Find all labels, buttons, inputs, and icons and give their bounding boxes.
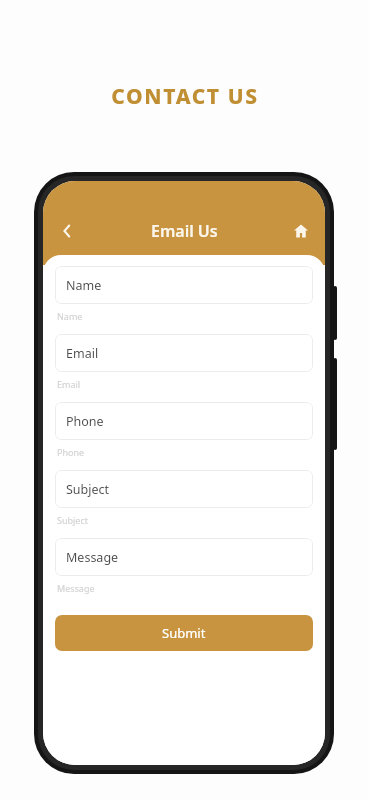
staticText: Message <box>57 582 95 594</box>
button[interactable]: Email <box>55 334 313 372</box>
staticText: Subject <box>57 514 89 526</box>
staticText: Phone <box>57 446 85 458</box>
staticText: Name <box>57 310 83 322</box>
button[interactable]: Phone <box>55 402 313 440</box>
button[interactable]: Home <box>283 213 319 249</box>
staticText: Email <box>66 345 99 362</box>
button[interactable]: Message <box>55 538 313 576</box>
staticText: Email <box>57 378 81 390</box>
button[interactable]: Subject <box>55 470 313 508</box>
staticText: CONTACT US <box>111 82 259 111</box>
staticText: Name <box>66 277 102 294</box>
staticText: Subject <box>66 481 110 498</box>
staticText: Email Us <box>151 220 218 242</box>
button[interactable]: Submit <box>55 615 313 651</box>
button[interactable]: Name <box>55 266 313 304</box>
staticText: Submit <box>162 624 206 642</box>
staticText: Message <box>66 549 119 566</box>
button[interactable]: Back <box>49 213 85 249</box>
staticText: Phone <box>66 413 104 430</box>
